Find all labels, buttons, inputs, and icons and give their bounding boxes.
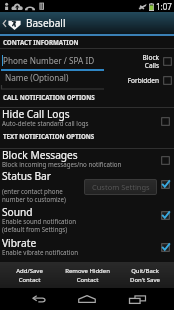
staticText: Add/Save Contact	[16, 267, 43, 283]
staticText: Name (Optional)	[5, 72, 69, 83]
button[interactable]: Quit/Back Don't Save	[116, 262, 174, 288]
staticText: Phone Number / SPA ID	[3, 55, 95, 66]
staticText: Block Messages	[2, 148, 78, 162]
staticText: Block incoming messages/no notification	[2, 160, 122, 168]
button[interactable]: Sound	[0, 206, 174, 236]
button[interactable]: Navigate up	[0, 12, 174, 34]
button[interactable]: Forbidden	[108, 76, 172, 85]
staticText: (enter contact phone number to customize…	[2, 187, 66, 203]
staticText: Baseball	[26, 16, 66, 30]
button[interactable]: Recent apps	[119, 288, 155, 310]
button[interactable]: Name (Optional)	[0, 71, 106, 91]
button[interactable]: Vibrate	[0, 237, 174, 261]
button[interactable]: Add/Save Contact	[0, 262, 58, 288]
staticText: Block Calls	[108, 53, 159, 70]
button[interactable]: Phone Number / SPA ID	[0, 52, 106, 71]
button[interactable]: Hide Call Logs	[0, 108, 174, 134]
staticText: CALL NOTIFICATION OPTIONS	[3, 93, 95, 101]
button[interactable]: Remove Hidden Contact	[58, 262, 116, 288]
staticText: 1:07	[156, 1, 172, 12]
button[interactable]: Block Calls	[108, 53, 172, 70]
button[interactable]: Custom Settings	[84, 179, 157, 195]
staticText: Remove Hidden Contact	[65, 267, 110, 283]
button[interactable]: Status Bar	[0, 170, 174, 204]
button[interactable]: Home	[69, 288, 105, 310]
staticText: Forbidden	[108, 76, 159, 85]
staticText: TEXT NOTIFICATION OPTIONS	[3, 132, 95, 140]
staticText: Enable sound notification (default from …	[2, 217, 76, 233]
staticText: Quit/Back Don't Save	[130, 267, 160, 283]
staticText: Auto-delete standard call logs	[2, 119, 89, 127]
staticText: Custom Settings	[92, 182, 150, 192]
button[interactable]: Back	[20, 288, 56, 310]
staticText: Sound	[2, 205, 33, 219]
staticText: CONTACT INFORMATION	[3, 38, 79, 46]
staticText: Enable vibrate notification	[2, 248, 78, 256]
staticText: Status Bar	[2, 169, 52, 183]
staticText: Hide Call Logs	[2, 107, 70, 121]
button[interactable]: Block Messages	[0, 149, 174, 171]
staticText: Vibrate	[2, 236, 37, 250]
